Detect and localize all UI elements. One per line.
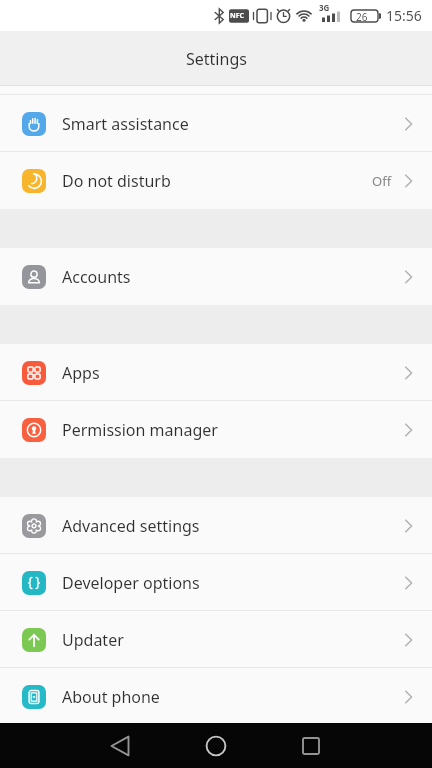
staticText: 26 [356,10,368,24]
button[interactable] [99,725,141,766]
staticText: Smart assistance [62,113,189,135]
button[interactable]: Advanced settings [0,497,432,554]
button[interactable]: Updater [0,611,432,668]
button[interactable]: Smart assistance [0,95,432,152]
button[interactable] [195,725,237,766]
staticText: Updater [62,629,124,651]
button[interactable]: Developer options [0,554,432,611]
staticText: Off [372,172,392,190]
staticText: 15:56 [386,6,422,25]
staticText: Developer options [62,572,200,594]
staticText: Accounts [62,266,131,288]
button[interactable]: Permission manager [0,401,432,458]
button[interactable]: Do not disturb [0,152,432,209]
staticText: Settings [186,48,247,70]
staticText: Advanced settings [62,515,200,537]
staticText: Apps [62,362,100,384]
button[interactable]: Apps [0,344,432,401]
staticText: 3G [319,2,330,13]
staticText: Do not disturb [62,170,171,192]
staticText: Permission manager [62,419,218,441]
staticText: About phone [62,686,160,708]
button[interactable]: Accounts [0,248,432,305]
button[interactable] [290,725,332,766]
staticText: NFC [230,11,245,21]
button[interactable]: About phone [0,668,432,725]
